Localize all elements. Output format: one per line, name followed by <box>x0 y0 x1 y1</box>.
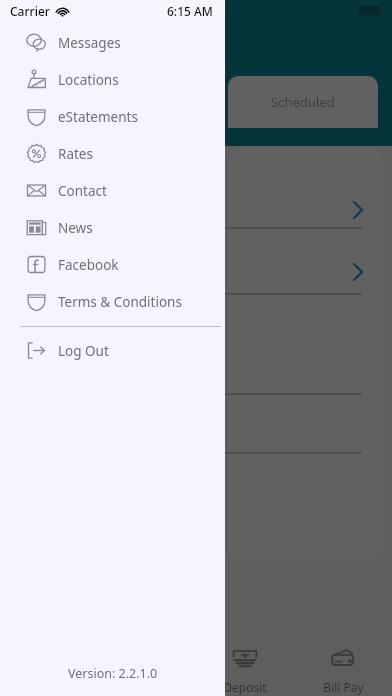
staticText: Scheduled <box>271 93 335 111</box>
staticText: Carrier <box>10 3 50 19</box>
staticText: Deposit <box>223 679 267 695</box>
staticText: Log Out <box>58 342 109 360</box>
staticText: Version: 2.2.1.0 <box>68 665 158 682</box>
staticText: Contact <box>58 182 107 200</box>
button[interactable]: Terms & Conditions <box>0 283 225 320</box>
staticText: Terms & Conditions <box>58 293 182 311</box>
button[interactable]: Bill Pay <box>294 630 392 696</box>
staticText: Rates <box>58 145 93 163</box>
staticText: Facebook <box>58 256 119 274</box>
staticText: Messages <box>58 34 121 52</box>
button[interactable]: Contact <box>0 172 225 209</box>
button[interactable]: eStatements <box>0 98 225 135</box>
staticText: Bill Pay <box>323 679 364 695</box>
button[interactable]: News <box>0 209 225 246</box>
staticText: 6:15 AM <box>167 3 213 19</box>
staticText: News <box>58 219 93 237</box>
staticText: Locations <box>58 71 119 89</box>
button[interactable]: Rates <box>0 135 225 172</box>
button[interactable]: Deposit <box>196 630 294 696</box>
staticText: eStatements <box>58 108 138 126</box>
button[interactable]: Messages <box>0 24 225 61</box>
button[interactable]: Log Out <box>0 332 225 369</box>
button[interactable]: Scheduled <box>228 76 378 128</box>
button[interactable]: Facebook <box>0 246 225 283</box>
button[interactable]: Locations <box>0 61 225 98</box>
